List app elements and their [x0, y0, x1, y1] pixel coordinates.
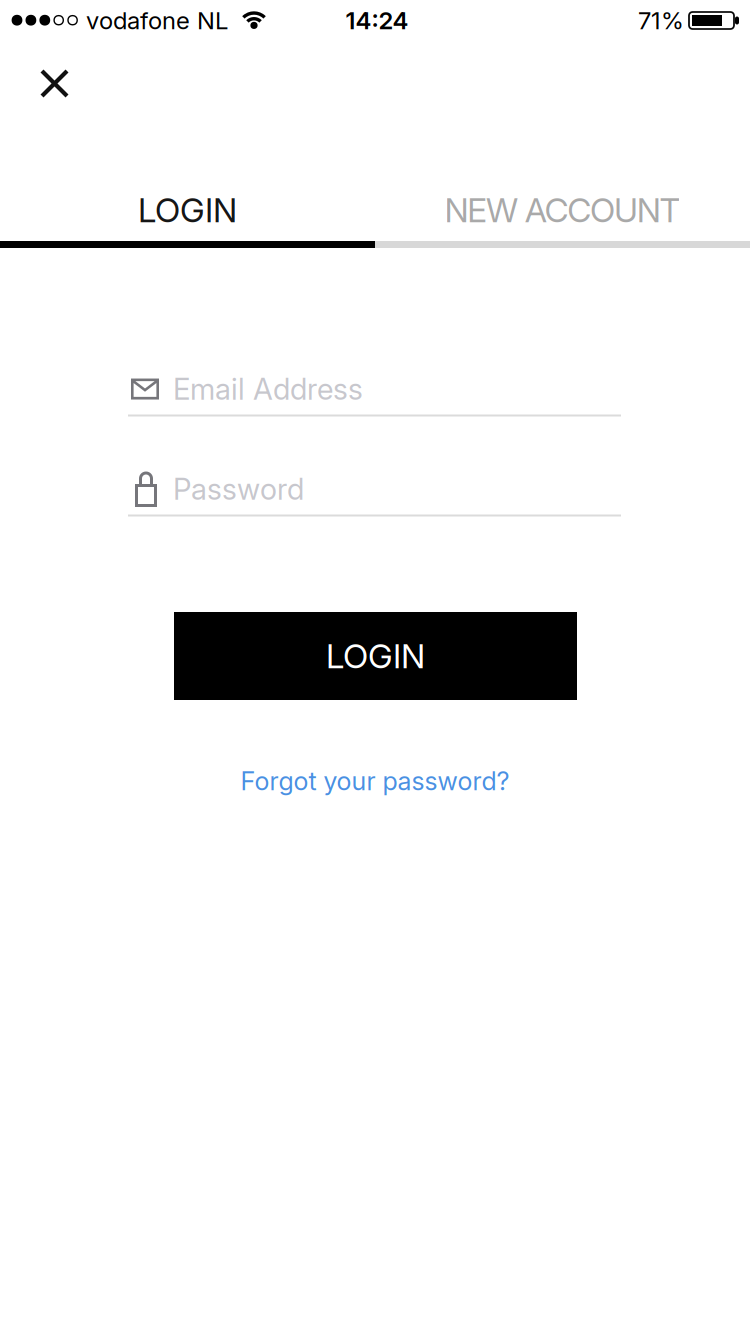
- button[interactable]: NEW ACCOUNT: [375, 177, 750, 243]
- staticText: LOGIN: [326, 636, 425, 676]
- button[interactable]: [29, 58, 79, 108]
- staticText: NEW ACCOUNT: [444, 190, 680, 230]
- staticText: Forgot your password?: [240, 766, 509, 796]
- staticText: Password: [173, 472, 304, 506]
- staticText: LOGIN: [138, 190, 237, 230]
- button[interactable]: LOGIN: [0, 177, 375, 243]
- button[interactable]: LOGIN: [174, 612, 577, 700]
- staticText: 14:24: [345, 6, 408, 35]
- button[interactable]: Password: [128, 460, 621, 518]
- button[interactable]: Forgot your password?: [240, 766, 509, 796]
- staticText: vodafone NL: [86, 6, 228, 35]
- button[interactable]: Email Address: [128, 360, 621, 418]
- staticText: Email Address: [173, 372, 363, 406]
- staticText: 71%: [638, 6, 684, 35]
